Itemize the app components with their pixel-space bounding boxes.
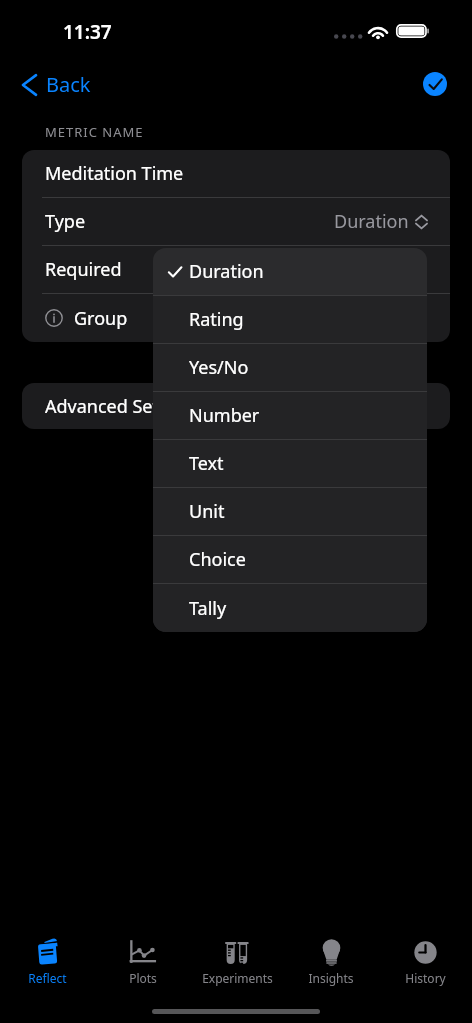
- staticText: Experiments: [202, 970, 273, 986]
- button[interactable]: Number: [153, 392, 427, 439]
- button[interactable]: Choice: [153, 536, 427, 583]
- button[interactable]: Meditation Time: [22, 150, 450, 197]
- staticText: Meditation Time: [45, 161, 184, 186]
- button[interactable]: Unit: [153, 488, 427, 535]
- staticText: Type: [45, 209, 86, 234]
- staticText: Choice: [189, 547, 246, 572]
- button[interactable]: Save: [423, 72, 447, 96]
- staticText: Plots: [129, 970, 157, 986]
- staticText: Number: [189, 403, 260, 428]
- staticText: Text: [189, 451, 224, 476]
- staticText: 11:37: [63, 19, 112, 45]
- staticText: Back: [46, 71, 91, 98]
- staticText: Required: [45, 257, 122, 282]
- button[interactable]: Reflect: [0, 922, 95, 986]
- staticText: Rating: [189, 307, 244, 332]
- staticText: Unit: [189, 499, 225, 524]
- button[interactable]: Required: [22, 246, 450, 293]
- button[interactable]: Text: [153, 440, 427, 487]
- staticText: Tally: [189, 596, 227, 621]
- button[interactable]: Type: [22, 198, 450, 245]
- button[interactable]: Advanced Settings: [22, 383, 450, 429]
- staticText: Advanced Settings: [45, 394, 201, 419]
- button[interactable]: History: [378, 922, 472, 986]
- button[interactable]: Tally: [153, 584, 427, 632]
- button[interactable]: Duration: [153, 248, 427, 295]
- staticText: Insights: [308, 970, 354, 986]
- staticText: Duration: [189, 259, 264, 284]
- staticText: METRIC NAME: [45, 123, 144, 141]
- button[interactable]: Group: [22, 294, 450, 342]
- button[interactable]: Experiments: [190, 922, 284, 986]
- staticText: Group: [74, 306, 128, 331]
- staticText: Yes/No: [189, 355, 249, 380]
- staticText: History: [405, 970, 446, 986]
- button[interactable]: Plots: [95, 922, 190, 986]
- staticText: Reflect: [28, 970, 67, 986]
- button[interactable]: Insights: [284, 922, 378, 986]
- button[interactable]: Back: [14, 65, 95, 104]
- button[interactable]: Yes/No: [153, 344, 427, 391]
- button[interactable]: Rating: [153, 296, 427, 343]
- staticText: Duration: [334, 209, 409, 234]
